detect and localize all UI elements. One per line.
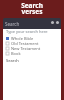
button[interactable]: Search — [6, 58, 19, 63]
staticText: Search — [5, 21, 20, 27]
other: Clear — [51, 21, 54, 24]
staticText: Book — [11, 51, 21, 56]
button[interactable]: New Testament — [3, 46, 61, 51]
staticText: Old Testament — [11, 41, 39, 46]
button[interactable]: Old Testament — [3, 41, 61, 46]
button[interactable]: Search — [3, 18, 61, 29]
button[interactable]: Book — [3, 51, 61, 56]
staticText: New Testament — [11, 46, 41, 51]
staticText: Type your search here — [6, 29, 48, 34]
staticText: Search — [6, 58, 19, 63]
staticText: Whole Bible — [11, 36, 34, 41]
other: Voice search — [56, 21, 59, 24]
staticText: Search verses — [21, 1, 43, 16]
button[interactable]: Whole Bible — [3, 36, 61, 41]
